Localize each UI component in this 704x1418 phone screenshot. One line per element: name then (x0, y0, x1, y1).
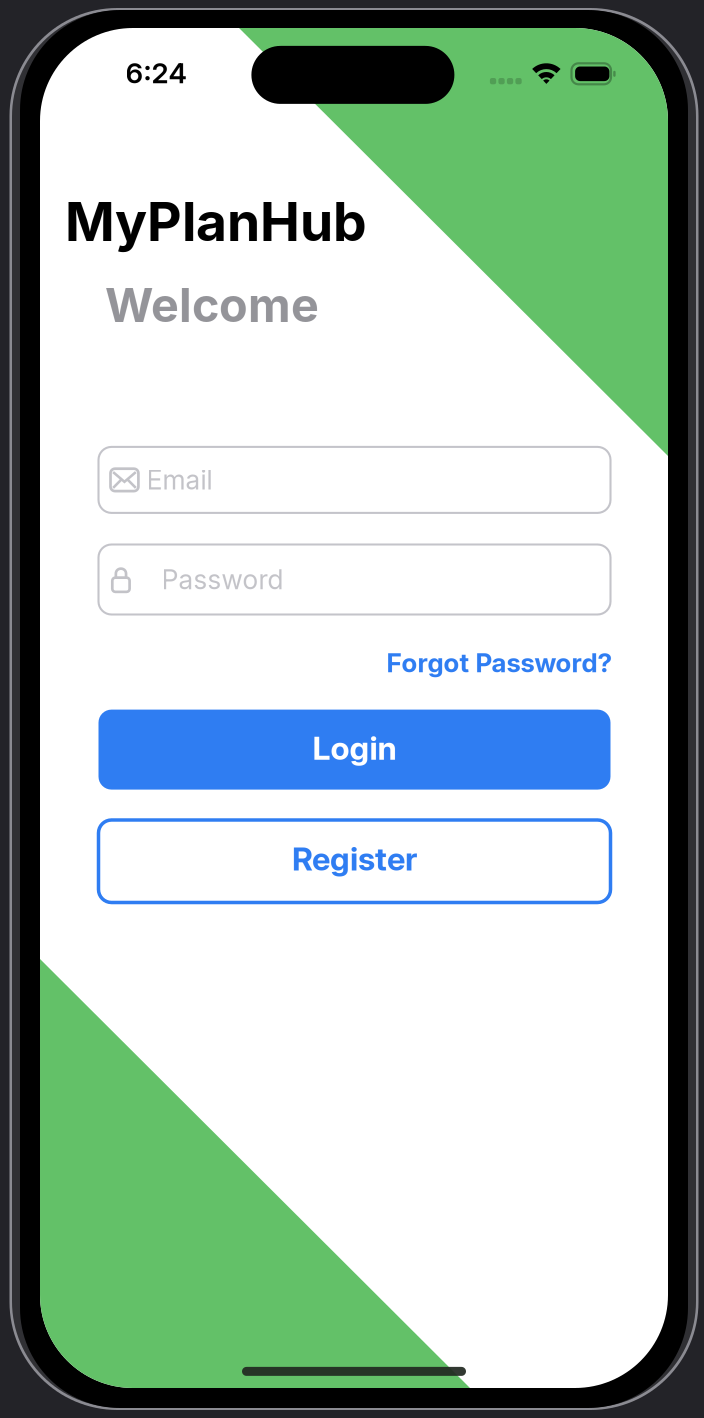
staticText: Email (146, 464, 212, 496)
staticText: Welcome (105, 277, 319, 333)
button[interactable]: Forgot Password? (98, 646, 612, 680)
button[interactable]: Email (98, 447, 610, 513)
staticText: MyPlanHub (65, 189, 367, 254)
staticText: Forgot Password? (386, 647, 612, 679)
staticText: Password (161, 563, 283, 596)
button[interactable]: Login (98, 710, 610, 790)
staticText: Login (312, 729, 396, 767)
button[interactable]: Password (98, 544, 610, 614)
staticText: 6:24 (125, 56, 186, 90)
staticText: Register (292, 839, 417, 878)
button[interactable]: Register (98, 820, 610, 902)
